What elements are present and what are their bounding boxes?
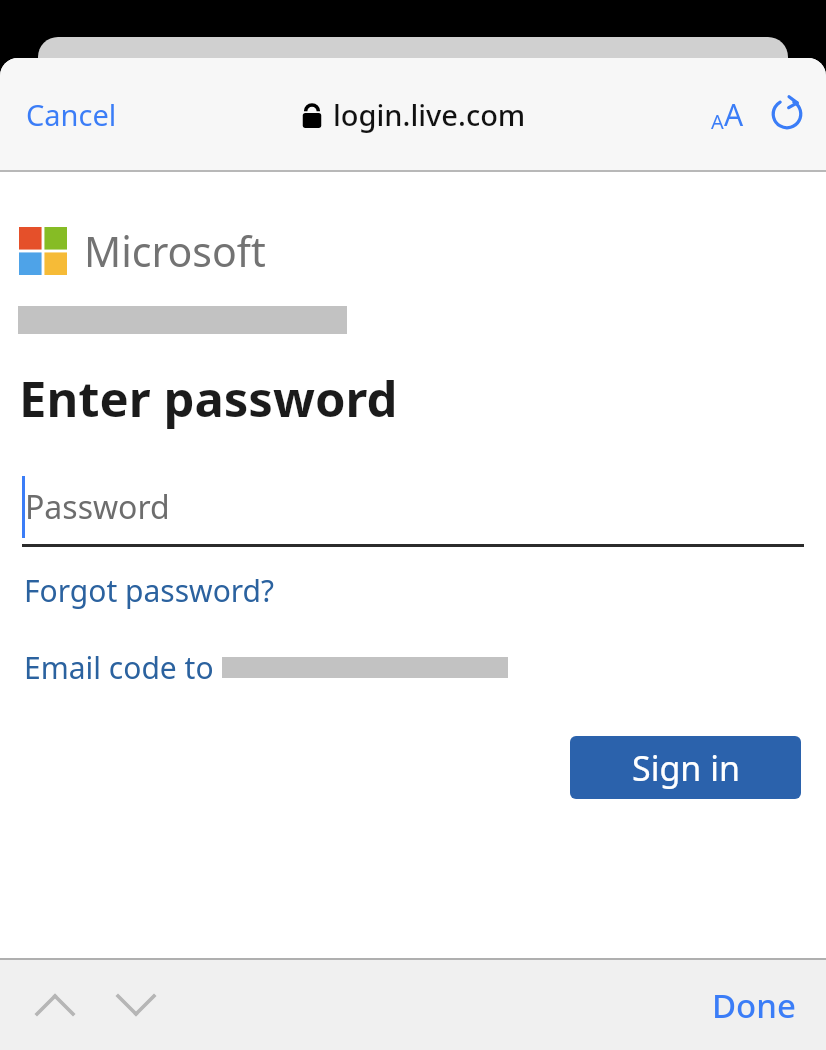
staticText: A xyxy=(724,94,744,135)
button[interactable]: Password xyxy=(22,467,804,547)
button[interactable]: Text size xyxy=(705,86,750,143)
button[interactable]: Cancel xyxy=(14,87,129,142)
button[interactable]: Forgot password? xyxy=(24,570,275,611)
staticText: Cancel xyxy=(26,95,117,134)
button[interactable]: Email code to xyxy=(24,647,508,688)
staticText: Sign in xyxy=(632,745,740,791)
button[interactable]: Reload xyxy=(766,93,808,135)
staticText: A xyxy=(711,108,724,135)
staticText: Forgot password? xyxy=(24,570,275,611)
staticText: Email code to xyxy=(24,647,222,688)
button[interactable]: Done xyxy=(700,975,808,1036)
button[interactable]: Sign in xyxy=(570,736,801,799)
button[interactable]: Previous field xyxy=(24,974,86,1036)
staticText: login.live.com xyxy=(333,95,526,134)
staticText: Microsoft xyxy=(84,223,266,279)
staticText: Enter password xyxy=(19,365,398,432)
staticText: Password xyxy=(25,485,170,529)
button[interactable]: Next field xyxy=(105,974,167,1036)
button[interactable]: login.live.com xyxy=(301,95,526,134)
staticText: Done xyxy=(712,983,796,1028)
